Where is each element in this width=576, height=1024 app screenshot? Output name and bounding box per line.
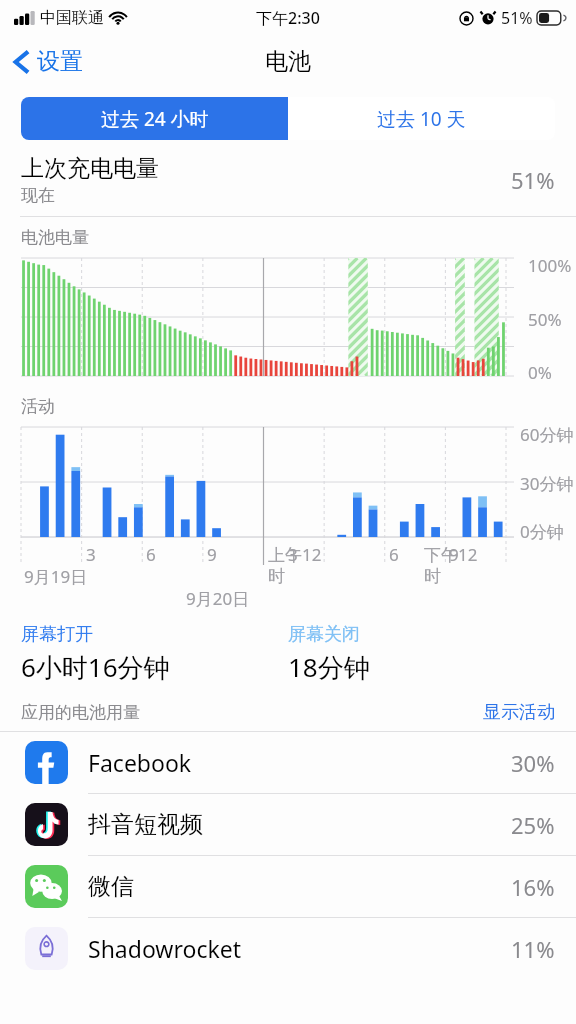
staticText: 9月20日: [186, 587, 250, 610]
staticText: 60分钟: [520, 423, 574, 446]
staticText: 现在: [21, 185, 55, 206]
staticText: 下午2:30: [256, 7, 320, 29]
staticText: 6: [146, 543, 156, 566]
staticText: 3: [288, 543, 298, 566]
staticText: 6小时16分钟: [21, 649, 170, 685]
staticText: 中国联通: [40, 8, 104, 28]
staticText: 30%: [511, 748, 555, 778]
staticText: 11%: [511, 934, 555, 964]
staticText: 时: [424, 566, 441, 587]
staticText: 抖音短视频: [88, 810, 511, 839]
button[interactable]: 显示活动: [483, 701, 555, 724]
staticText: 上午12: [268, 543, 322, 566]
staticText: 时: [268, 566, 285, 587]
staticText: 0分钟: [520, 520, 564, 543]
staticText: 51%: [501, 7, 533, 29]
staticText: 上次充电电量: [21, 154, 159, 183]
staticText: 18分钟: [288, 649, 370, 685]
staticText: 微信: [88, 872, 511, 901]
staticText: 电池电量: [21, 227, 89, 248]
button[interactable]: Shadowrocket: [0, 918, 576, 979]
staticText: 9: [207, 543, 217, 566]
staticText: 16%: [511, 872, 555, 902]
button[interactable]: 过去 24 小时: [21, 97, 288, 140]
staticText: 电池: [265, 47, 311, 76]
staticText: 30分钟: [520, 472, 574, 495]
staticText: 显示活动: [483, 701, 555, 724]
button[interactable]: 微信: [0, 856, 576, 917]
staticText: 25%: [511, 810, 555, 840]
button[interactable]: Facebook: [0, 732, 576, 793]
staticText: 设置: [37, 47, 83, 76]
staticText: Shadowrocket: [88, 933, 511, 964]
staticText: 9月19日: [24, 565, 88, 588]
staticText: 51%: [511, 165, 555, 195]
staticText: 100%: [528, 254, 572, 277]
staticText: 3: [86, 543, 96, 566]
button[interactable]: 抖音短视频: [0, 794, 576, 855]
button[interactable]: 设置: [0, 41, 93, 82]
staticText: 应用的电池用量: [21, 702, 483, 723]
staticText: Facebook: [88, 747, 511, 778]
staticText: 6: [389, 543, 399, 566]
staticText: 0%: [528, 361, 552, 384]
staticText: 活动: [21, 396, 55, 417]
button[interactable]: 过去 10 天: [288, 97, 555, 140]
staticText: 屏幕打开: [21, 623, 93, 646]
staticText: 过去 10 天: [377, 106, 466, 132]
staticText: 下午12: [424, 543, 478, 566]
staticText: 屏幕关闭: [288, 623, 360, 646]
staticText: 9: [449, 543, 459, 566]
staticText: 50%: [528, 308, 562, 331]
staticText: 过去 24 小时: [101, 106, 209, 132]
